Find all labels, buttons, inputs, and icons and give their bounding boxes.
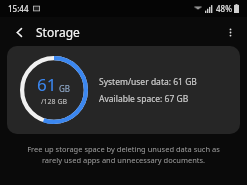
staticText: System/user data: 61 GB (99, 76, 197, 88)
staticText: 61 (37, 73, 57, 96)
staticText: Storage (36, 24, 80, 40)
button[interactable]: Back (8, 21, 30, 43)
staticText: GB (59, 83, 71, 94)
staticText: Free up storage space by deleting unused… (18, 144, 229, 165)
button[interactable]: More options (219, 21, 241, 43)
staticText: Available space: 67 GB (99, 93, 189, 105)
staticText: 48% (216, 3, 232, 14)
staticText: 15:44 (8, 3, 29, 14)
button[interactable]: 61 (7, 46, 240, 134)
staticText: /128 GB (41, 97, 68, 107)
